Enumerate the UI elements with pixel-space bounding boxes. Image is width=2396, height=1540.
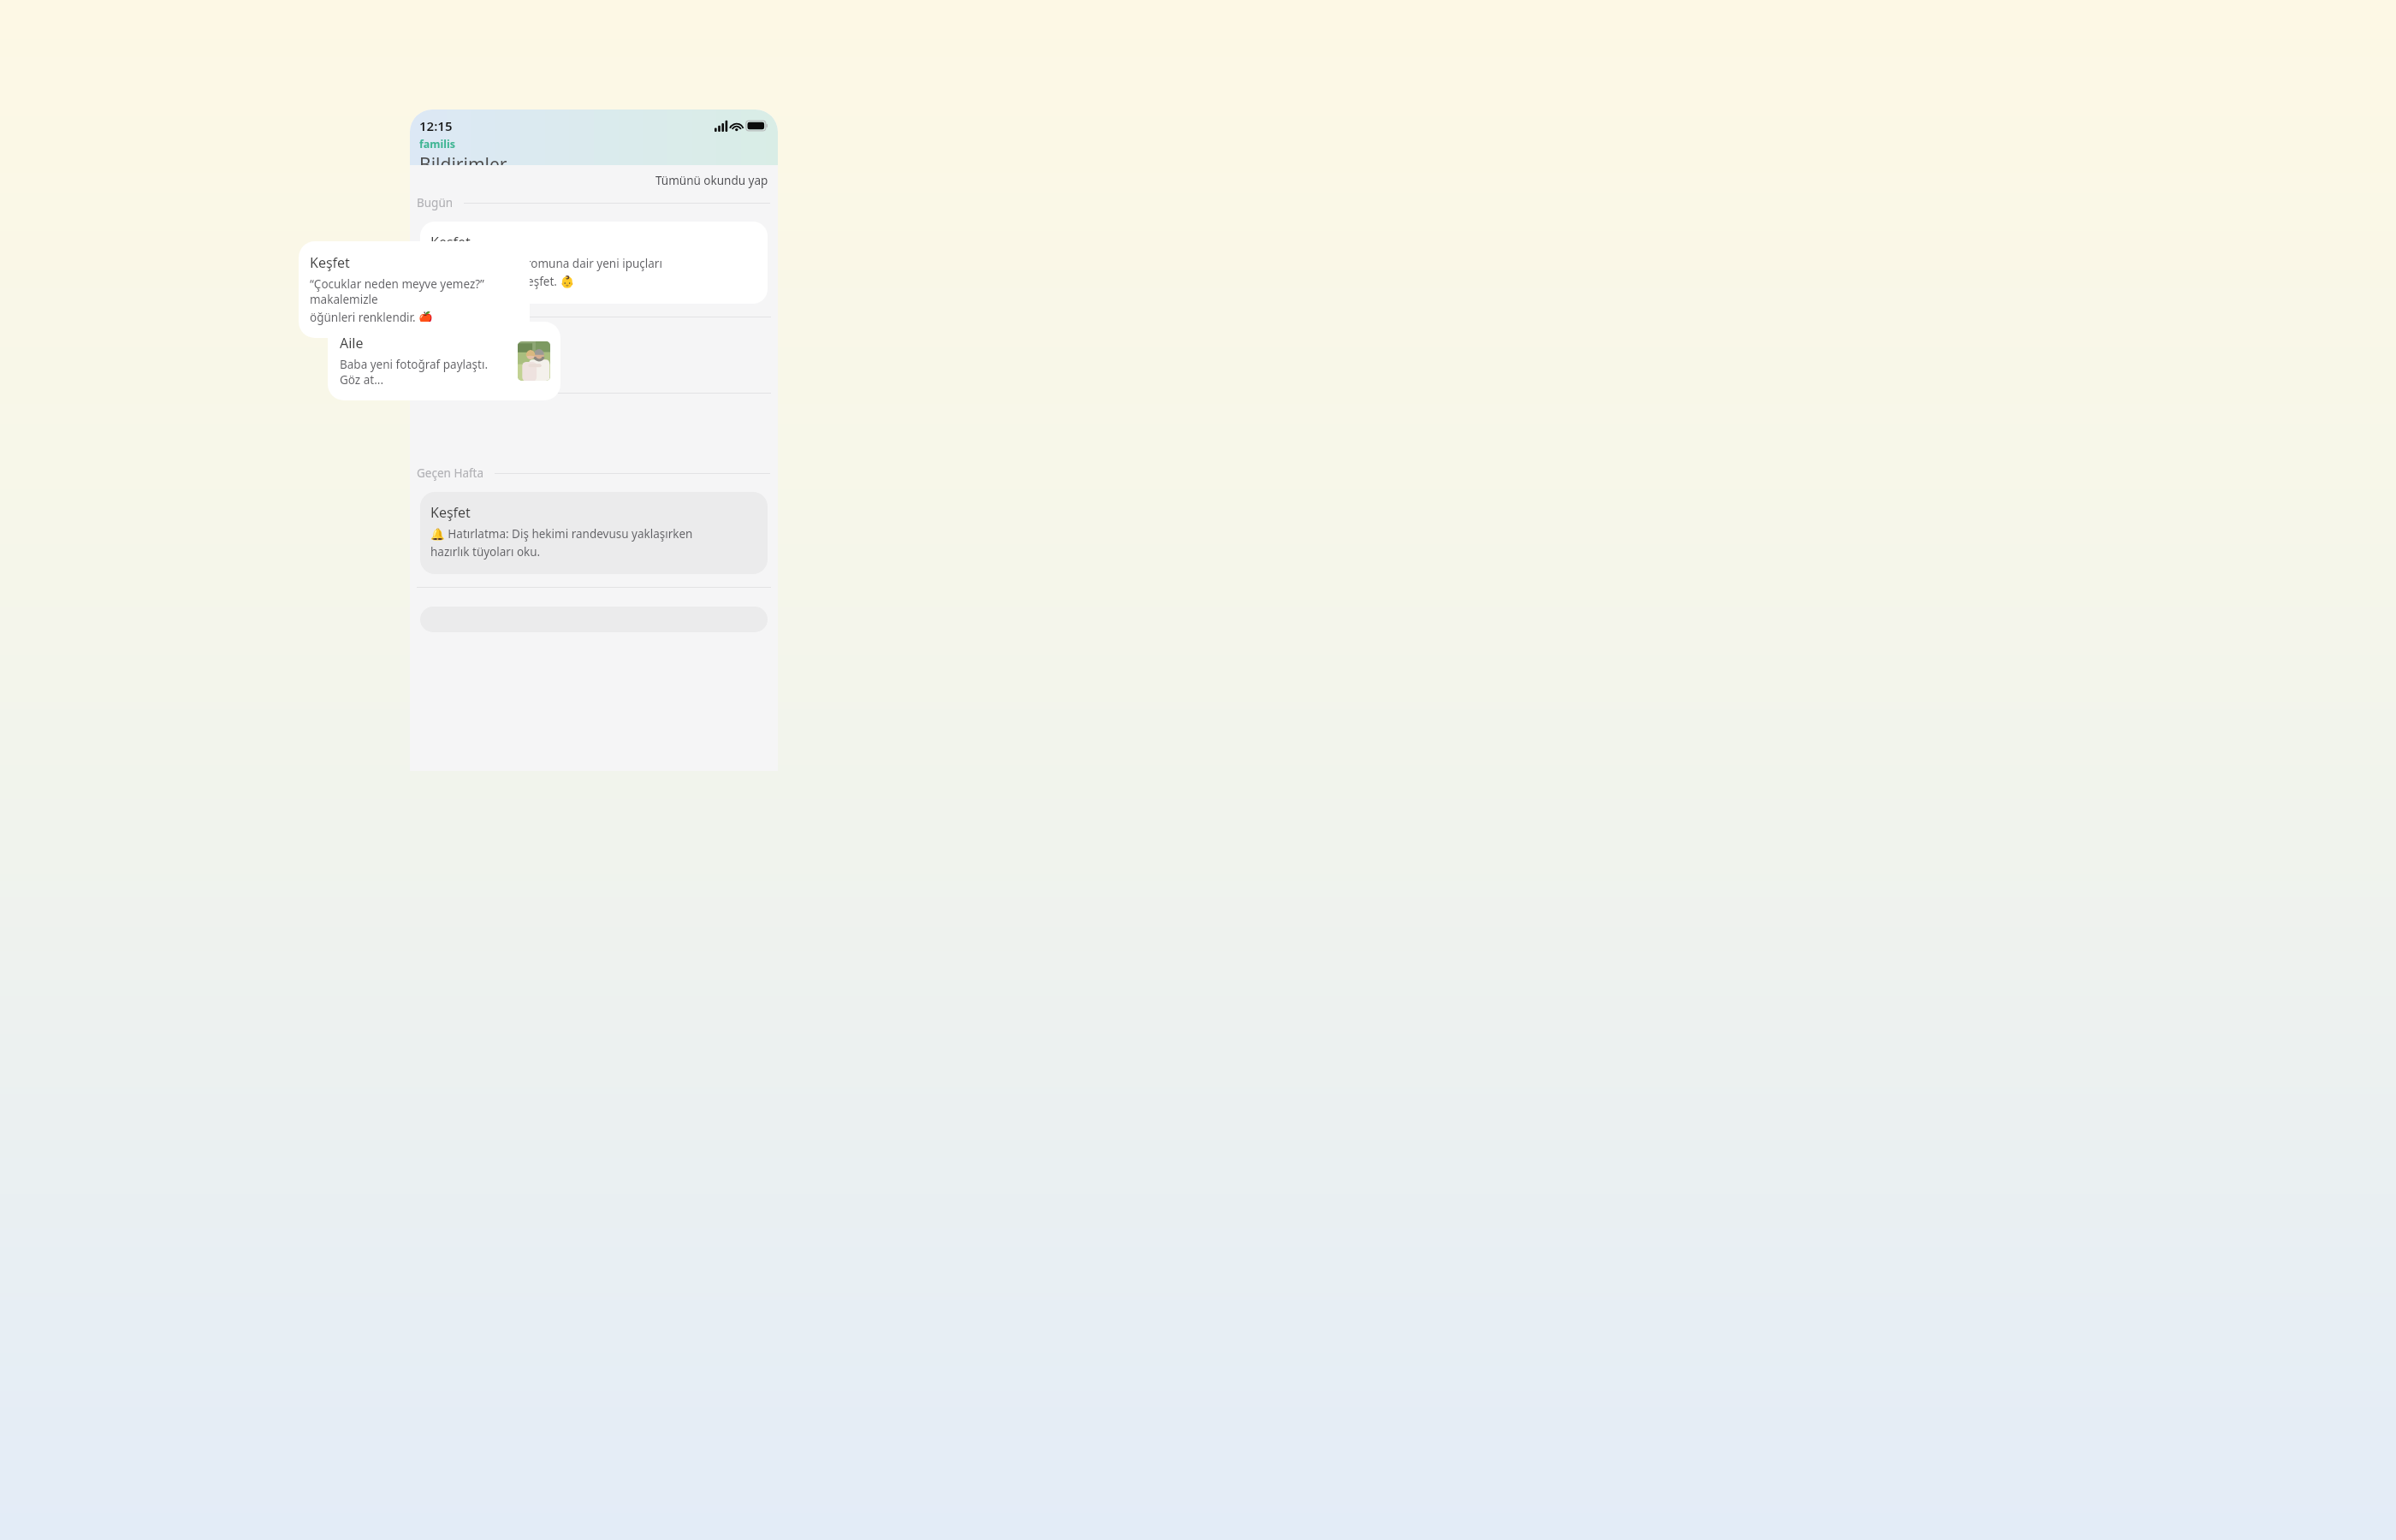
staticText: Bugün — [417, 195, 454, 210]
staticText: yayında! Hemen keşfet. 👶 — [430, 274, 575, 289]
button[interactable]: Keşfet — [420, 492, 768, 574]
staticText: Geçen Hafta — [417, 465, 484, 481]
staticText: 12:15 — [419, 117, 453, 134]
staticText: “Çocuklar neden meyve yemez?” makalemizl… — [310, 276, 519, 307]
button[interactable]: Keşfet — [420, 222, 768, 304]
staticText: Keşfet — [430, 503, 471, 522]
staticText: 🔔 Hatırlatma: Diş hekimi randevusu yakla… — [430, 526, 693, 542]
staticText: Bugün 2 yaş sendromuna dair yeni ipuçlar… — [430, 256, 662, 271]
button[interactable]: Tümünü okundu yap — [654, 171, 770, 190]
staticText: Baba yeni fotoğraf paylaştı. Göz at... — [340, 357, 511, 388]
button[interactable]: Aile — [328, 322, 560, 400]
button[interactable]: Keşfet — [299, 241, 530, 338]
staticText: familis — [419, 137, 455, 151]
staticText: Aile — [340, 334, 364, 352]
staticText: Keşfet — [310, 253, 350, 272]
staticText: hazırlık tüyoları oku. — [430, 544, 541, 560]
staticText: Bildirimler — [419, 152, 507, 165]
staticText: Tümünü okundu yap — [655, 173, 768, 188]
staticText: Keşfet — [430, 233, 471, 252]
staticText: öğünleri renklendir. 🍎 — [310, 310, 433, 325]
